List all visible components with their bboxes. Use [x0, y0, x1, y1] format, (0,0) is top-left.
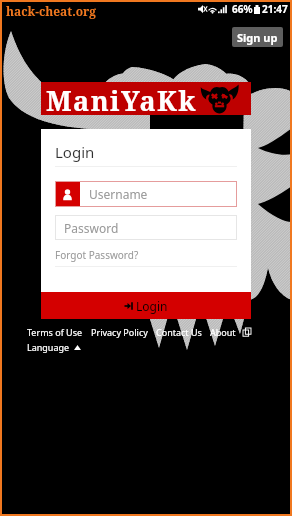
staticText: 21:47 — [262, 2, 288, 16]
button[interactable]: Contact Us — [156, 326, 202, 338]
button[interactable]: Forgot Password? — [55, 248, 139, 262]
button[interactable]: Sign up — [232, 27, 283, 47]
staticText: Password — [64, 220, 119, 236]
button[interactable]: About — [210, 326, 236, 338]
other: Copy — [243, 328, 251, 336]
staticText: 66% — [232, 2, 253, 16]
staticText: Login — [55, 142, 95, 162]
staticText: Language — [27, 341, 70, 353]
button[interactable]: Terms of Use — [27, 326, 83, 338]
staticText: Sign up — [237, 30, 278, 45]
button[interactable]: Login — [41, 292, 251, 319]
staticText: ManiYaKk — [46, 82, 197, 115]
button[interactable]: Privacy Policy — [91, 326, 148, 338]
staticText: Login — [136, 298, 168, 314]
other: ManiYaKk logo — [200, 84, 239, 114]
button[interactable]: Language — [27, 341, 81, 353]
staticText: Username — [89, 186, 148, 202]
staticText: hack-cheat.org — [6, 3, 97, 19]
